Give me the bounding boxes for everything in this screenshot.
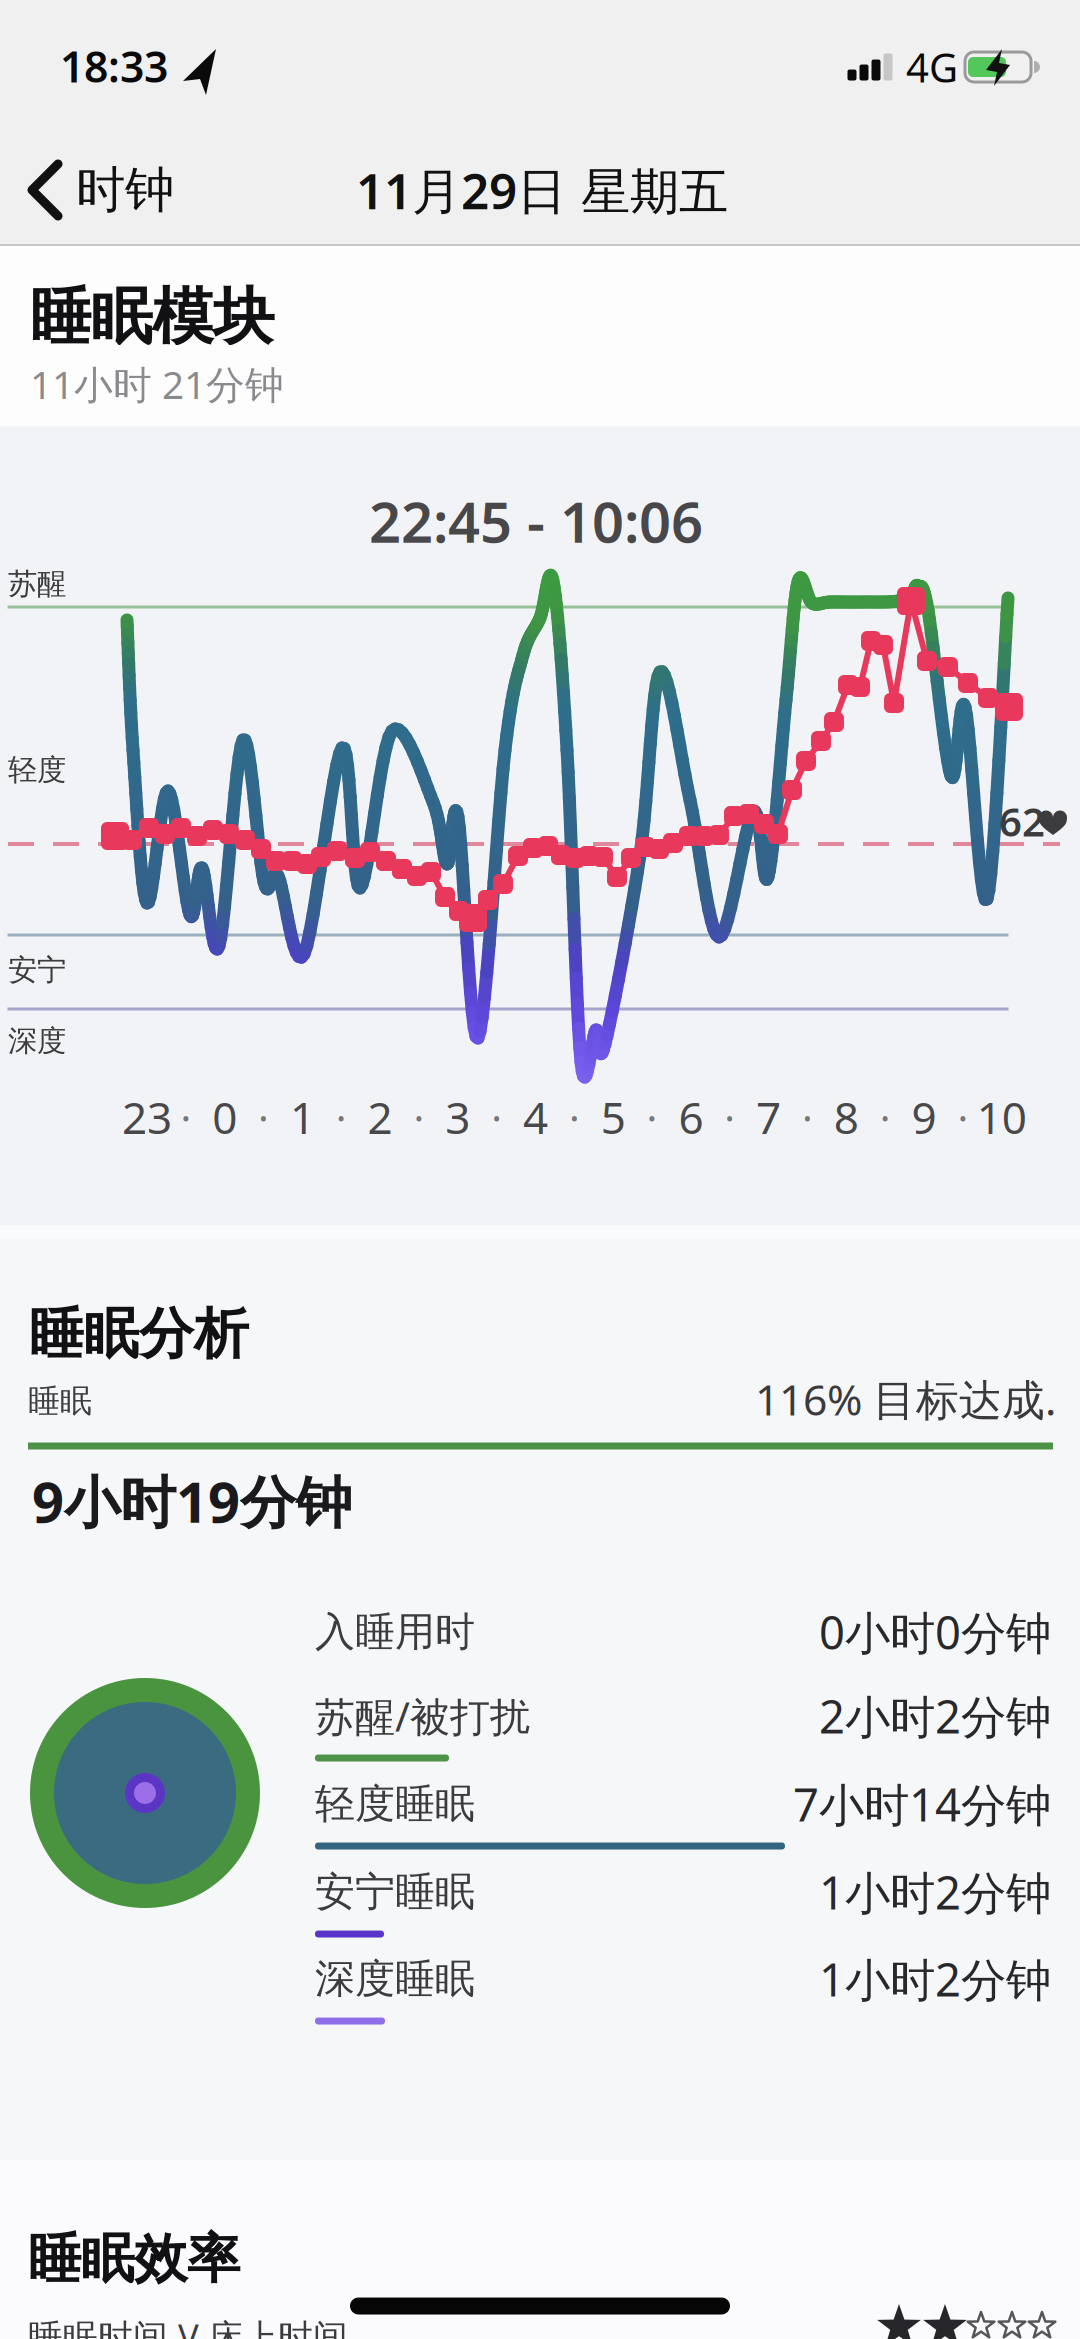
- staticText: 6: [678, 1088, 703, 1146]
- staticText: 苏醒: [8, 566, 66, 602]
- staticText: 睡眠效率: [28, 2226, 240, 2292]
- staticText: 睡眠时间 V 床上时间: [28, 2313, 348, 2339]
- staticText: 苏醒/被打扰: [315, 1689, 530, 1742]
- staticText: ·: [413, 1090, 424, 1143]
- staticText: 1: [290, 1088, 315, 1146]
- staticText: 5: [601, 1088, 626, 1146]
- staticText: 8: [834, 1088, 859, 1146]
- staticText: 0: [212, 1088, 237, 1146]
- staticText: 9小时19分钟: [32, 1464, 352, 1538]
- staticText: ·: [880, 1090, 891, 1143]
- staticText: 1小时2分钟: [819, 1949, 1051, 2009]
- staticText: 深度睡眠: [315, 1954, 475, 2003]
- staticText: 安宁睡眠: [315, 1867, 475, 1916]
- staticText: ·: [647, 1090, 658, 1143]
- staticText: 9: [911, 1088, 936, 1146]
- staticText: 3: [445, 1088, 470, 1146]
- button[interactable]: 返回时钟: [28, 145, 248, 235]
- staticText: 2: [368, 1088, 393, 1146]
- staticText: 23: [122, 1088, 172, 1146]
- staticText: 睡眠: [28, 1381, 92, 1421]
- staticText: 4: [523, 1088, 548, 1146]
- staticText: 1小时2分钟: [819, 1862, 1051, 1922]
- staticText: ·: [258, 1090, 269, 1143]
- staticText: 2小时2分钟: [819, 1686, 1051, 1746]
- staticText: 18:33: [60, 38, 168, 94]
- staticText: 10: [977, 1088, 1027, 1146]
- staticText: ·: [336, 1090, 347, 1143]
- staticText: 4G: [906, 40, 958, 93]
- staticText: 轻度: [8, 752, 66, 788]
- staticText: 入睡用时: [315, 1607, 475, 1656]
- staticText: 深度: [8, 1023, 66, 1059]
- staticText: 62: [999, 794, 1045, 847]
- staticText: 11月29日 星期五: [356, 157, 728, 223]
- staticText: 116% 目标达成.: [755, 1371, 1056, 1427]
- staticText: ·: [491, 1090, 502, 1143]
- staticText: ·: [180, 1090, 191, 1143]
- staticText: 7: [756, 1088, 781, 1146]
- staticText: 时钟: [76, 160, 174, 220]
- staticText: 睡眠分析: [29, 1300, 249, 1367]
- staticText: 22:45 - 10:06: [369, 484, 703, 558]
- staticText: 0小时0分钟: [819, 1602, 1051, 1662]
- staticText: 轻度睡眠: [315, 1779, 475, 1828]
- staticText: ·: [724, 1090, 735, 1143]
- staticText: ·: [957, 1090, 968, 1143]
- staticText: 安宁: [8, 952, 66, 988]
- staticText: 睡眠模块: [30, 279, 274, 355]
- staticText: ·: [569, 1090, 580, 1143]
- staticText: 7小时14分钟: [793, 1774, 1051, 1834]
- staticText: ·: [802, 1090, 813, 1143]
- staticText: 11小时 21分钟: [30, 358, 284, 410]
